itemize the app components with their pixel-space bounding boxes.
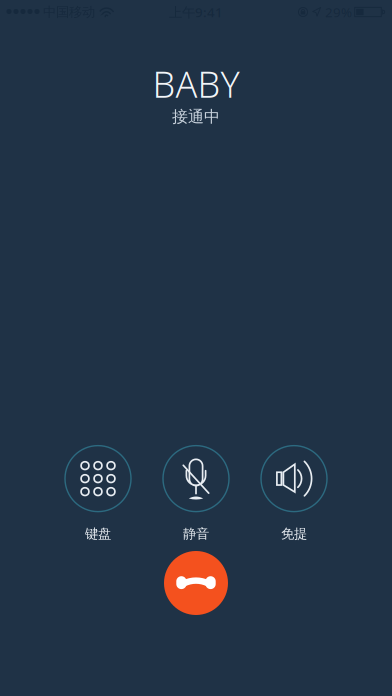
staticText: 免提 xyxy=(281,526,307,542)
button[interactable]: 免提 xyxy=(245,446,343,542)
button[interactable]: 键盘 xyxy=(49,446,147,542)
button[interactable]: End call xyxy=(164,551,228,615)
button[interactable]: 静音 xyxy=(147,446,245,542)
staticText: 键盘 xyxy=(85,526,111,542)
staticText: BABY xyxy=(152,60,239,108)
staticText: 静音 xyxy=(183,526,209,542)
staticText: 接通中 xyxy=(172,107,220,126)
